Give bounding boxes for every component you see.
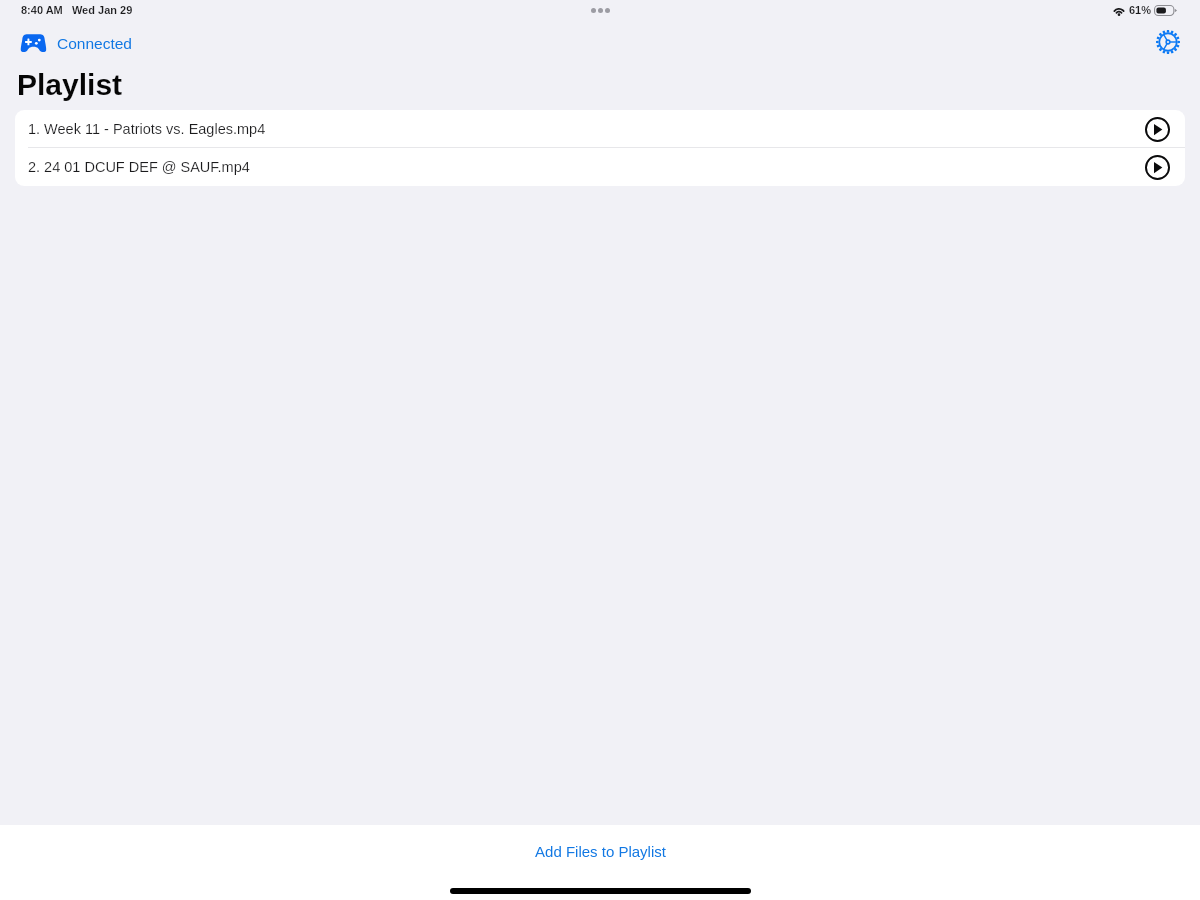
button[interactable]: Connected — [20, 34, 132, 52]
button[interactable]: 2. 24 01 DCUF DEF @ SAUF.mp4 — [15, 148, 1185, 186]
staticText: 61% — [1129, 4, 1152, 16]
staticText: Connected — [57, 35, 132, 52]
staticText: 2. 24 01 DCUF DEF @ SAUF.mp4 — [28, 159, 250, 175]
button[interactable]: Play — [1145, 155, 1170, 180]
button[interactable]: Add Files to Playlist — [535, 843, 666, 860]
staticText: 8:40 AM Wed Jan 29 — [21, 4, 133, 16]
button[interactable]: Settings — [1156, 30, 1180, 54]
staticText: Playlist — [17, 68, 123, 102]
button[interactable]: Play — [1145, 117, 1170, 142]
staticText: 1. Week 11 - Patriots vs. Eagles.mp4 — [28, 121, 266, 137]
staticText: Add Files to Playlist — [535, 843, 666, 860]
button[interactable]: 1. Week 11 - Patriots vs. Eagles.mp4 — [15, 110, 1185, 148]
